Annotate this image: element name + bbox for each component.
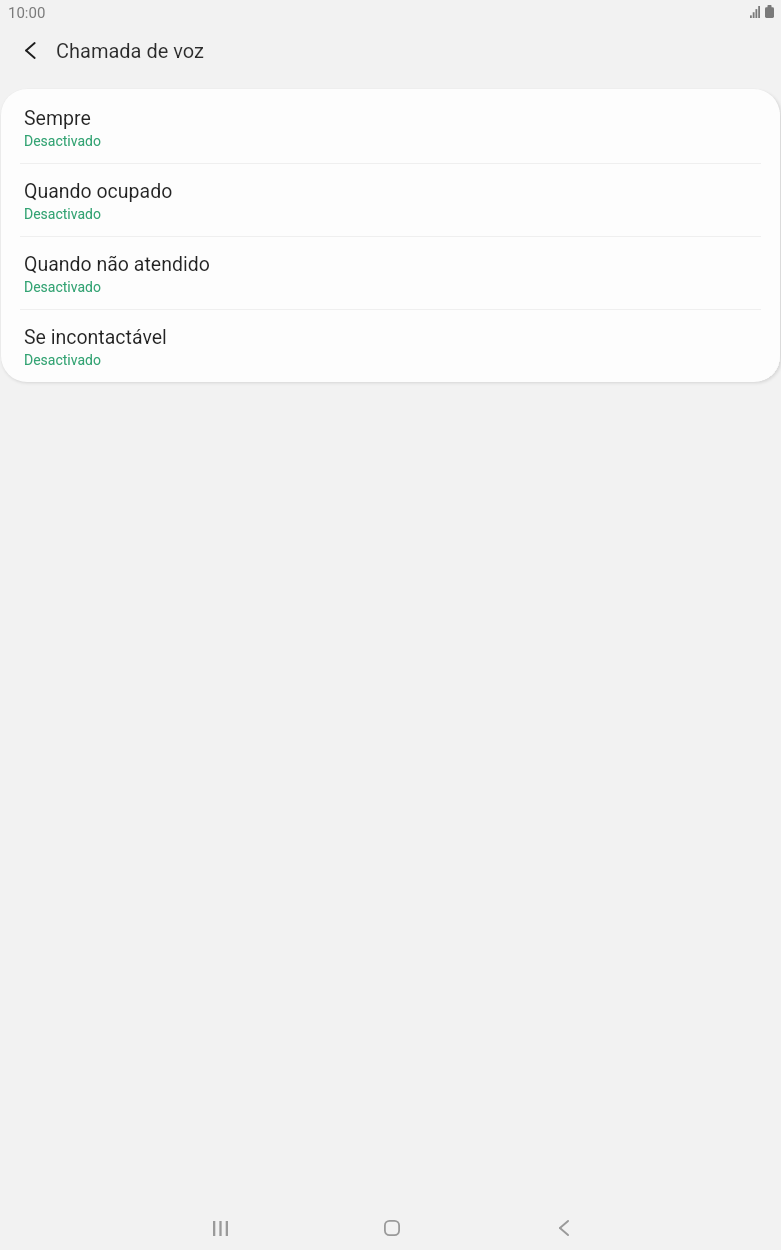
- button[interactable]: Se incontactável: [1, 310, 780, 382]
- staticText: Sempre: [24, 107, 91, 130]
- button[interactable]: Home: [306, 1206, 478, 1250]
- staticText: Chamada de voz: [56, 39, 205, 62]
- button[interactable]: Recent apps: [134, 1206, 306, 1250]
- staticText: 10:00: [8, 4, 46, 22]
- staticText: Desactivado: [24, 206, 101, 222]
- staticText: Se incontactável: [24, 326, 167, 349]
- staticText: Desactivado: [24, 133, 101, 149]
- button[interactable]: Sempre: [1, 89, 780, 164]
- staticText: Quando ocupado: [24, 180, 173, 203]
- button[interactable]: Quando ocupado: [1, 164, 780, 237]
- button[interactable]: Quando não atendido: [1, 237, 780, 310]
- staticText: Quando não atendido: [24, 253, 210, 276]
- staticText: Desactivado: [24, 279, 101, 295]
- staticText: Desactivado: [24, 352, 101, 368]
- button[interactable]: Back: [478, 1206, 650, 1250]
- button[interactable]: Back: [7, 27, 53, 73]
